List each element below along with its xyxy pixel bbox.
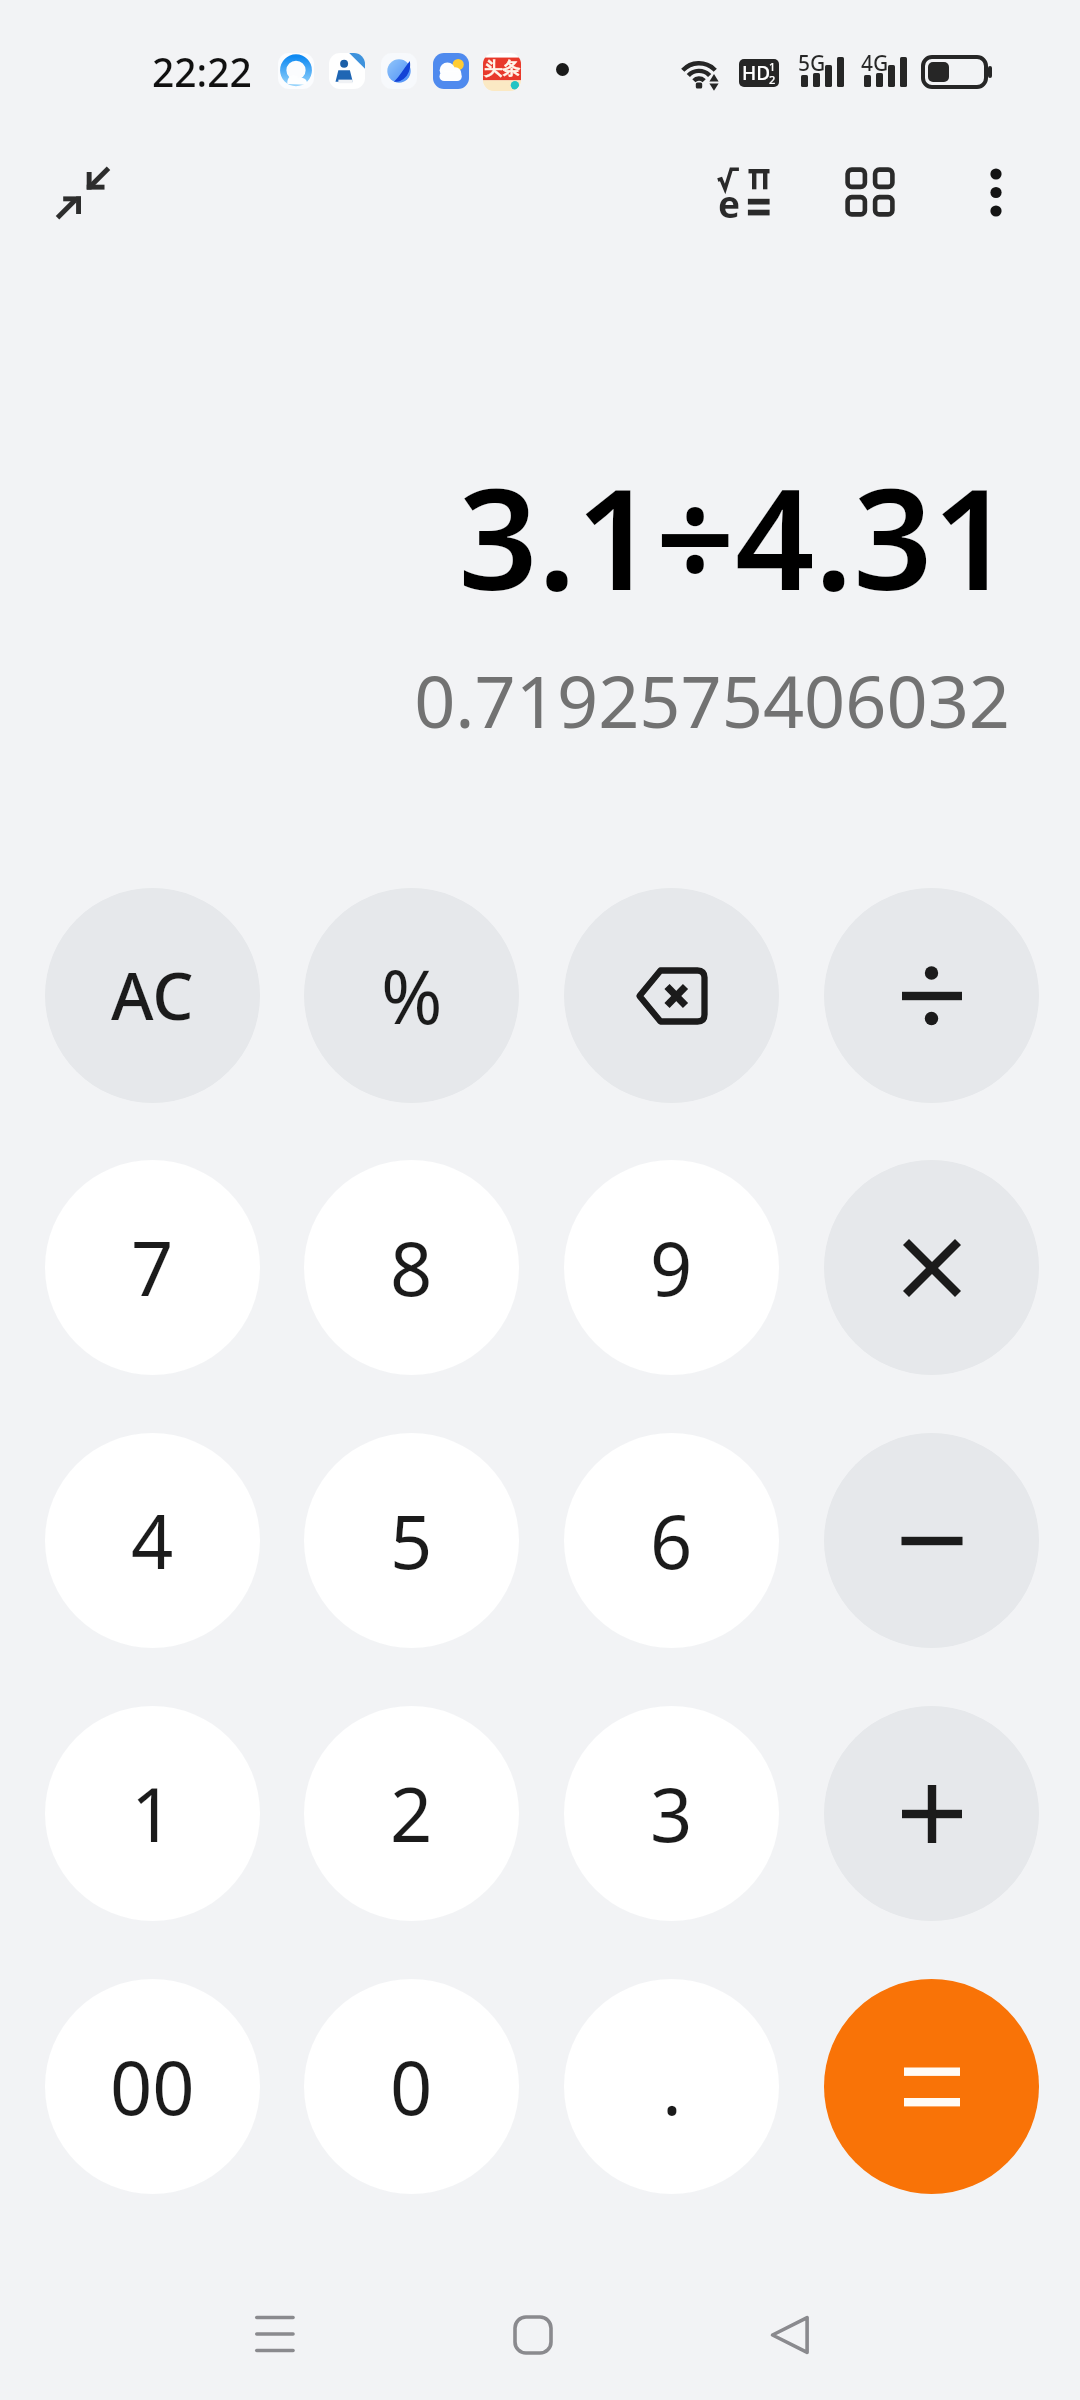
staticText: e (718, 178, 741, 228)
staticText: 3.1÷4.31 (0, 441, 1012, 630)
button[interactable]: 9 (564, 1160, 779, 1375)
button[interactable]: 8 (304, 1160, 519, 1375)
button[interactable]: 0 (304, 1979, 519, 2194)
staticText: % (381, 945, 443, 1046)
button[interactable]: 6 (564, 1433, 779, 1648)
staticText: 6 (650, 1490, 693, 1591)
staticText: 8 (390, 1217, 433, 1318)
button[interactable]: Backspace (564, 888, 779, 1103)
staticText: 2 (769, 72, 776, 87)
staticText: 头条 (484, 58, 520, 81)
staticText: 4 (131, 1490, 174, 1591)
staticText: 9 (650, 1217, 693, 1318)
button[interactable]: Unit converter (825, 147, 915, 237)
button[interactable]: Equals (824, 1979, 1039, 2194)
button[interactable]: More options (951, 152, 1041, 242)
button[interactable]: 5 (304, 1433, 519, 1648)
button[interactable]: 7 (45, 1160, 260, 1375)
button[interactable]: 3 (564, 1706, 779, 1921)
staticText: 5G (798, 49, 826, 78)
staticText: 0.7192575406032 (0, 651, 1010, 749)
button[interactable]: Plus (824, 1706, 1039, 1921)
button[interactable]: Recent apps (215, 2275, 335, 2395)
staticText: 1 (131, 1763, 174, 1864)
staticText: . (662, 2036, 682, 2137)
staticText: 22:22 (152, 45, 252, 98)
staticText: 7 (131, 1217, 174, 1318)
button[interactable]: Scientific (693, 145, 793, 245)
button[interactable]: Divide (824, 888, 1039, 1103)
button[interactable]: 4 (45, 1433, 260, 1648)
button[interactable]: . (564, 1979, 779, 2194)
staticText: 4G (861, 49, 889, 78)
button[interactable]: Collapse (38, 148, 128, 238)
staticText: 2 (390, 1763, 433, 1864)
staticText: 00 (110, 2036, 195, 2137)
button[interactable]: % (304, 888, 519, 1103)
button[interactable]: 2 (304, 1706, 519, 1921)
staticText: 1 (769, 59, 776, 74)
staticText: HD (742, 60, 771, 86)
button[interactable]: Back (730, 2275, 850, 2395)
button[interactable]: Multiply (824, 1160, 1039, 1375)
staticText: 3 (650, 1763, 693, 1864)
staticText: AC (111, 951, 194, 1040)
button[interactable]: Minus (824, 1433, 1039, 1648)
staticText: 5 (390, 1490, 433, 1591)
button[interactable]: Home (473, 2275, 593, 2395)
button[interactable]: 1 (45, 1706, 260, 1921)
button[interactable]: AC (45, 888, 260, 1103)
button[interactable]: 00 (45, 1979, 260, 2194)
staticText: 0 (390, 2036, 433, 2137)
